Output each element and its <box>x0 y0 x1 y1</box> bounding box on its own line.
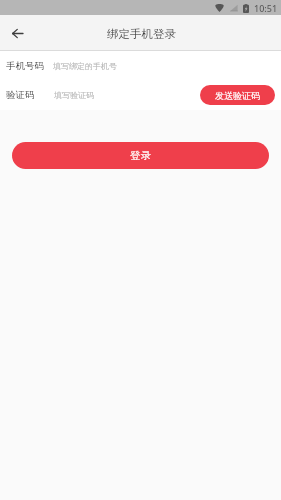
button[interactable]: 登录 <box>12 142 269 169</box>
button[interactable]: 手机号码 <box>0 51 281 80</box>
staticText: 手机号码 <box>6 60 44 72</box>
button[interactable]: 验证码 <box>0 80 200 110</box>
button[interactable]: Back <box>0 16 35 51</box>
button[interactable]: 发送验证码 <box>200 85 275 105</box>
staticText: 验证码 <box>6 89 35 101</box>
staticText: 填写验证码 <box>54 90 94 100</box>
staticText: 登录 <box>130 149 151 162</box>
staticText: 发送验证码 <box>215 90 260 101</box>
staticText: 绑定手机登录 <box>107 27 176 41</box>
staticText: 填写绑定的手机号 <box>53 61 117 71</box>
staticText: 10:51 <box>254 2 278 14</box>
